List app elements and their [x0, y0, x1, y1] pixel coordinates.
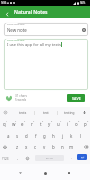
button[interactable]: h [49, 130, 58, 141]
staticText: v [43, 144, 46, 150]
staticText: 8 [69, 120, 71, 123]
staticText: texts [19, 111, 27, 115]
staticText: 9:06 [1, 1, 7, 5]
button[interactable]: 8 [63, 118, 72, 129]
staticText: 3 [24, 120, 26, 123]
staticText: Write note text [7, 38, 25, 41]
button[interactable]: v [40, 141, 49, 152]
staticText: j [62, 133, 64, 139]
button[interactable]: n [58, 141, 67, 152]
staticText: l [80, 133, 82, 139]
button[interactable]: z [13, 141, 22, 152]
button[interactable]: g [40, 130, 49, 141]
staticText: 1 [6, 120, 8, 123]
button[interactable]: 4 [27, 118, 36, 129]
button[interactable]: 9 [72, 118, 81, 129]
staticText: q [3, 121, 6, 127]
button[interactable]: x [22, 141, 31, 152]
button[interactable]: Recents [64, 168, 74, 178]
staticText: , [17, 155, 18, 160]
staticText: 9 [78, 120, 80, 123]
button[interactable]: a [4, 130, 13, 141]
button[interactable]: ?123 [0, 153, 10, 164]
button[interactable]: texts [12, 107, 34, 118]
staticText: ?123 [2, 157, 9, 161]
staticText: text [43, 111, 49, 115]
button[interactable]: Home [40, 168, 50, 178]
button[interactable]: texting [58, 107, 80, 118]
button[interactable]: j [58, 130, 67, 141]
staticText: a [7, 133, 10, 139]
staticText: r [31, 121, 33, 127]
button[interactable]: SAVE [67, 94, 85, 102]
button[interactable]: , [13, 153, 21, 164]
staticText: 31 chars [15, 94, 27, 98]
button[interactable]: 0 [81, 118, 90, 129]
staticText: x [25, 144, 28, 150]
staticText: c [34, 144, 37, 150]
button[interactable]: c [31, 141, 40, 152]
staticText: o [75, 121, 78, 127]
button[interactable]: 2 [9, 118, 18, 129]
staticText: u [57, 121, 60, 127]
staticText: 0 [87, 120, 89, 123]
button[interactable]: 6 [45, 118, 54, 129]
button[interactable]: d [22, 130, 31, 141]
button[interactable]: Shift [0, 141, 9, 152]
staticText: b [52, 144, 55, 150]
staticText: w [12, 121, 16, 127]
staticText: 7 [60, 120, 62, 123]
staticText: f [35, 133, 37, 139]
staticText: m [69, 144, 74, 150]
staticText: New note [7, 27, 27, 33]
staticText: I use this app for all my texts [7, 42, 61, 47]
staticText: 6 [51, 120, 53, 123]
button[interactable]: f [31, 130, 40, 141]
button[interactable]: Clipboard [1, 107, 10, 118]
staticText: k [70, 133, 73, 139]
staticText: h [52, 133, 55, 139]
staticText: 5 [42, 120, 44, 123]
button[interactable]: Space [35, 155, 64, 161]
staticText: 4 [33, 120, 35, 123]
button[interactable]: Emoji [23, 153, 31, 164]
button[interactable]: 7 [54, 118, 63, 129]
staticText: i [67, 121, 69, 127]
button[interactable]: l [76, 130, 85, 141]
staticText: EN-US [46, 157, 53, 160]
staticText: SAVE [72, 96, 81, 101]
button[interactable]: Enter [77, 154, 87, 160]
button[interactable]: m [67, 141, 76, 152]
staticText: . [71, 155, 72, 160]
staticText: n [61, 144, 64, 150]
button[interactable]: Hide keyboard [15, 168, 25, 178]
staticText: 56% [80, 1, 86, 5]
staticText: z [16, 144, 19, 150]
button[interactable]: Backspace [81, 141, 90, 152]
button[interactable]: b [49, 141, 58, 152]
staticText: 5 words [15, 98, 27, 102]
staticText: d [25, 133, 28, 139]
button[interactable]: 3 [18, 118, 27, 129]
button[interactable]: Back [0, 6, 13, 18]
staticText: 2 [15, 120, 17, 123]
staticText: Write note title [7, 22, 25, 25]
staticText: g [43, 133, 46, 139]
staticText: t [40, 121, 42, 127]
button[interactable]: text [35, 107, 57, 118]
button[interactable]: k [67, 130, 76, 141]
staticText: texting [64, 111, 75, 115]
button[interactable]: Clear title [81, 27, 87, 33]
button[interactable]: s [13, 130, 22, 141]
staticText: y [48, 121, 51, 127]
staticText: Natural Notes [14, 9, 48, 16]
button[interactable]: 1 [0, 118, 9, 129]
staticText: e [21, 121, 24, 127]
button[interactable]: Voice input [80, 107, 89, 118]
staticText: s [16, 133, 19, 139]
button[interactable]: 5 [36, 118, 45, 129]
staticText: p [84, 121, 87, 127]
